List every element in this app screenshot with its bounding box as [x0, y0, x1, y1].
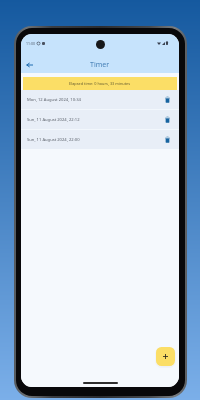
staticText: 11:00	[26, 41, 35, 46]
button[interactable]: Add timer	[156, 347, 175, 366]
staticText: Elapsed time: 0 hours, 33 minutes	[69, 81, 131, 86]
button[interactable]: Back	[23, 59, 35, 71]
staticText: Sun, 11 August 2024, 22:12	[27, 117, 162, 123]
button[interactable]: Delete	[162, 114, 173, 125]
staticText: Sun, 11 August 2024, 22:00	[27, 137, 162, 143]
button[interactable]: Delete	[162, 94, 173, 105]
button[interactable]: Sun, 11 August 2024, 22:00	[21, 130, 179, 149]
button[interactable]: Mon, 12 August 2024, 10:34	[21, 90, 179, 109]
button[interactable]: Delete	[162, 134, 173, 145]
staticText: Mon, 12 August 2024, 10:34	[27, 97, 162, 103]
staticText: Timer	[90, 60, 110, 70]
button[interactable]: Sun, 11 August 2024, 22:12	[21, 110, 179, 129]
